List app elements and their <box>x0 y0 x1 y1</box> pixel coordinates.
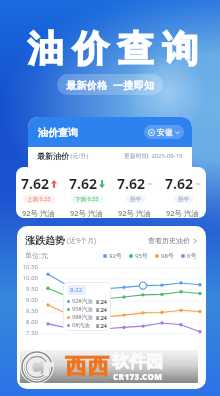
button[interactable]: 安徽 <box>144 125 184 139</box>
staticText: 油价查询 <box>38 126 78 139</box>
staticText: 持平 <box>178 196 189 203</box>
staticText: 持平 <box>130 196 141 203</box>
staticText: 最新油价 <box>37 151 69 161</box>
button[interactable]: 查看历史油价 <box>148 236 197 245</box>
staticText: 92号 汽油 <box>166 208 200 218</box>
staticText: 8.24 <box>96 314 107 321</box>
staticText: 92号 <box>109 252 122 260</box>
staticText: 92号 汽油 <box>70 208 104 218</box>
staticText: 单位:元 <box>25 251 48 261</box>
staticText: 9.50 <box>17 285 38 293</box>
staticText: 油价查询 <box>23 26 203 71</box>
staticText: 8.24 <box>96 298 107 305</box>
staticText: 8.00 <box>17 318 38 326</box>
staticText: 95#汽油 <box>72 305 93 313</box>
staticText: 下调 0.33 <box>75 195 99 203</box>
staticText: 10.50 <box>17 263 38 271</box>
staticText: 0#汽油 <box>72 321 90 329</box>
staticText: 西西 <box>65 353 109 381</box>
staticText: 7.50 <box>17 329 38 337</box>
staticText: 安徽 <box>157 127 173 137</box>
staticText: (近9个月) <box>65 236 97 246</box>
staticText: 8.50 <box>17 307 38 315</box>
staticText: 92号 汽油 <box>22 208 56 218</box>
staticText: 最新价格 一搜即知 <box>66 78 155 92</box>
staticText: 软件园 <box>112 351 163 372</box>
staticText: 7.62 <box>69 174 97 193</box>
staticText: (元/升) <box>69 152 89 160</box>
staticText: 8.24 <box>96 306 107 313</box>
staticText: 7.62 <box>165 174 193 193</box>
staticText: 92#汽油 <box>72 297 93 305</box>
staticText: 98#汽油 <box>72 313 93 321</box>
staticText: CR173.COM <box>113 371 163 382</box>
staticText: 9.00 <box>17 296 38 304</box>
staticText: 上调 0.33 <box>27 195 51 203</box>
staticText: 8-22 <box>70 286 83 294</box>
button[interactable]: 7.62 <box>160 167 206 218</box>
button[interactable]: 7.62 <box>16 167 62 218</box>
staticText: 7.62 <box>21 174 49 193</box>
button[interactable]: 7.62 <box>112 167 158 218</box>
staticText: 更新时间: 2025-09-15 <box>124 152 183 160</box>
button[interactable]: 7.62 <box>64 167 110 218</box>
staticText: Cr <box>26 349 54 382</box>
staticText: 8.24 <box>96 322 107 329</box>
button[interactable]: 最新价格 一搜即知 <box>57 74 163 95</box>
staticText: 查看历史油价 <box>148 236 190 245</box>
staticText: 92号 汽油 <box>118 208 152 218</box>
staticText: 0号 <box>187 252 197 260</box>
staticText: 98号 <box>161 252 174 260</box>
staticText: 95号 <box>135 252 148 260</box>
staticText: 7.62 <box>117 174 145 193</box>
staticText: 涨跌趋势 <box>25 234 65 247</box>
staticText: 10.00 <box>17 274 38 282</box>
